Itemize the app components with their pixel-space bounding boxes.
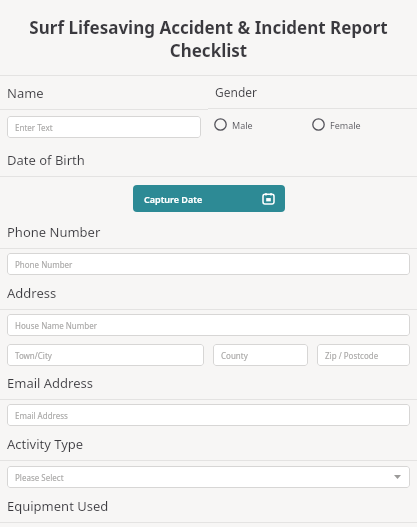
button[interactable]: House Name Number: [7, 314, 410, 336]
staticText: House Name Number: [15, 320, 98, 331]
button[interactable]: Zip / Postcode: [317, 344, 410, 366]
staticText: Equipment Used: [7, 497, 109, 515]
button[interactable]: Male: [214, 118, 253, 131]
staticText: County: [221, 350, 248, 361]
button[interactable]: Capture Date: [133, 185, 285, 212]
staticText: Town/City: [15, 350, 52, 361]
staticText: Email Address: [15, 410, 68, 421]
staticText: Male: [232, 119, 253, 131]
button[interactable]: County: [213, 344, 308, 366]
other: Calendar: [263, 193, 274, 204]
staticText: Please Select: [15, 472, 64, 483]
staticText: Phone Number: [15, 259, 73, 270]
button[interactable]: Phone Number: [7, 253, 410, 275]
staticText: Date of Birth: [7, 151, 85, 169]
staticText: Female: [330, 119, 361, 131]
button[interactable]: Female: [312, 118, 361, 131]
staticText: Email Address: [7, 374, 93, 392]
staticText: Address: [7, 284, 57, 302]
staticText: Capture Date: [144, 193, 203, 205]
staticText: Gender: [215, 84, 258, 100]
staticText: Phone Number: [7, 223, 101, 241]
button[interactable]: Please Select: [7, 466, 410, 488]
button[interactable]: Email Address: [7, 404, 410, 426]
staticText: Zip / Postcode: [325, 350, 379, 361]
staticText: Enter Text: [15, 122, 53, 133]
button[interactable]: Town/City: [7, 344, 204, 366]
staticText: Surf Lifesaving Accident & Incident Repo…: [14, 16, 403, 62]
staticText: Activity Type: [7, 435, 84, 453]
button[interactable]: Enter Text: [7, 116, 201, 138]
staticText: Name: [7, 84, 44, 102]
